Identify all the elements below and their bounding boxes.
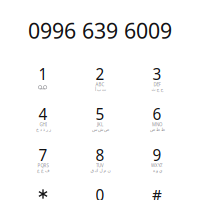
staticText: 8	[95, 145, 104, 165]
staticText: 7	[38, 145, 47, 165]
staticText: ح ج ث	[151, 87, 163, 92]
button[interactable]: 7	[14, 147, 71, 187]
button[interactable]: 6	[128, 106, 185, 146]
staticText: PQRS	[37, 162, 48, 168]
staticText: 9	[152, 145, 161, 165]
staticText: ف غ ع	[36, 168, 49, 173]
staticText: 0996 639 6009	[28, 16, 172, 45]
staticText: ABC	[95, 81, 104, 87]
staticText: ي و ه	[152, 168, 161, 173]
button[interactable]: 0	[71, 187, 128, 200]
staticText: ن م ل ك ق	[90, 168, 110, 173]
staticText: 4	[38, 104, 47, 124]
staticText: 3	[152, 64, 161, 84]
staticText: MNO	[152, 121, 162, 127]
staticText: JKL	[97, 121, 103, 127]
staticText: DEF	[153, 81, 160, 87]
staticText: WXYZ	[151, 162, 163, 168]
button[interactable]: 4	[14, 106, 71, 146]
button[interactable]: 9	[128, 147, 185, 187]
staticText: ت ب أ	[94, 87, 105, 92]
button[interactable]: #	[128, 187, 185, 200]
button[interactable]: 5	[71, 106, 128, 146]
button[interactable]	[14, 187, 71, 200]
staticText: 5	[95, 104, 104, 124]
staticText: ظ ط ض	[149, 127, 164, 132]
staticText: ص ش س	[91, 127, 108, 132]
staticText: TUV	[96, 162, 104, 168]
staticText: GHI	[39, 121, 46, 127]
staticText: ز ر ذ د خ	[35, 127, 50, 132]
button[interactable]: 3	[128, 66, 185, 106]
button[interactable]: 2	[71, 66, 128, 106]
button[interactable]: 8	[71, 147, 128, 187]
staticText: #	[152, 185, 162, 200]
staticText: 1	[38, 64, 47, 84]
staticText: 6	[152, 104, 161, 124]
staticText: 2	[95, 64, 104, 84]
staticText: 0	[95, 185, 104, 200]
button[interactable]: 1	[14, 66, 71, 106]
